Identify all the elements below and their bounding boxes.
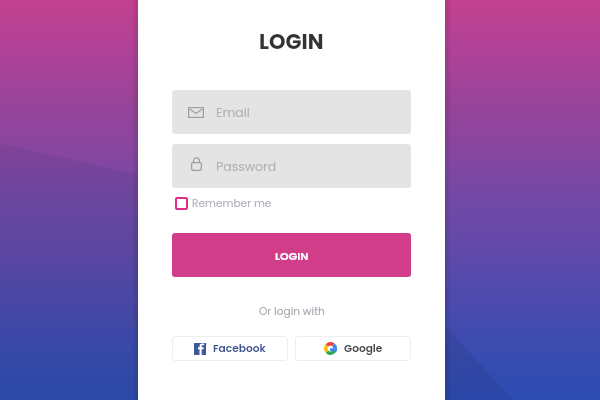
button[interactable]: Google xyxy=(295,336,411,361)
button[interactable]: LOGIN xyxy=(172,233,411,277)
staticText: Facebook xyxy=(213,341,266,356)
button[interactable]: Remember me xyxy=(172,196,411,211)
button[interactable]: Password xyxy=(172,144,411,188)
staticText: Email xyxy=(216,104,250,121)
button[interactable]: Facebook xyxy=(172,336,288,361)
button[interactable]: Email xyxy=(172,90,411,134)
staticText: Google xyxy=(344,341,383,356)
staticText: LOGIN xyxy=(259,27,324,56)
staticText: Password xyxy=(216,158,277,175)
staticText: Remember me xyxy=(192,196,272,211)
staticText: Or login with xyxy=(259,304,325,319)
staticText: LOGIN xyxy=(275,248,309,263)
